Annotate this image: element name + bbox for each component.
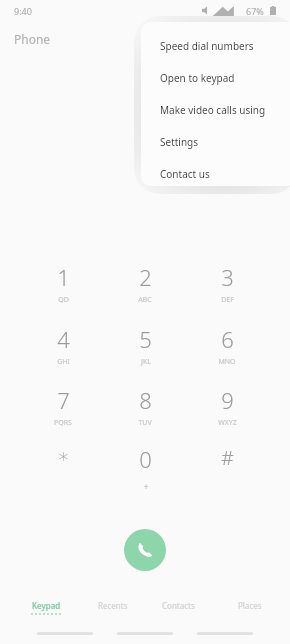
staticText: 3 <box>221 262 234 292</box>
button[interactable]: 3 <box>197 262 257 314</box>
button[interactable]: Call <box>124 529 166 571</box>
staticText: 1 <box>57 262 70 292</box>
button[interactable]: 1 <box>33 262 93 314</box>
staticText: 9 <box>221 385 234 415</box>
staticText: Open to keypad <box>160 71 235 85</box>
staticText: ABC <box>138 295 152 305</box>
staticText: WXYZ <box>218 418 237 428</box>
staticText: Speed dial numbers <box>160 39 254 53</box>
staticText: ∗ <box>57 444 70 467</box>
staticText: # <box>221 444 234 471</box>
button[interactable]: Places <box>217 600 283 622</box>
staticText: Phone <box>14 31 51 47</box>
staticText: GHI <box>57 357 70 367</box>
staticText: 4 <box>57 324 70 354</box>
button[interactable]: 7 <box>33 385 93 437</box>
staticText: Places <box>238 600 262 611</box>
staticText: 67% <box>246 5 264 17</box>
staticText: 2 <box>139 262 152 292</box>
staticText: Contacts <box>162 600 195 611</box>
staticText: DEF <box>221 295 234 305</box>
staticText: MNO <box>218 357 236 367</box>
button[interactable]: Settings <box>141 126 290 158</box>
button[interactable]: Keypad <box>13 600 79 622</box>
button[interactable]: ∗ <box>33 444 93 496</box>
button[interactable]: Speed dial numbers <box>141 30 290 62</box>
button[interactable]: Make video calls using <box>141 94 290 126</box>
button[interactable]: 0 <box>115 444 175 496</box>
button[interactable]: 6 <box>197 324 257 376</box>
button[interactable]: 8 <box>115 385 175 437</box>
button[interactable]: 5 <box>115 324 175 376</box>
staticText: QD <box>58 295 69 305</box>
staticText: 6 <box>221 324 234 354</box>
button[interactable]: Recents <box>80 600 146 622</box>
staticText: 7 <box>57 385 70 415</box>
staticText: 8 <box>139 385 152 415</box>
staticText: Make video calls using <box>160 103 266 117</box>
staticText: TUV <box>138 418 152 428</box>
staticText: Contact us <box>160 167 210 181</box>
staticText: 5 <box>139 324 152 354</box>
button[interactable]: Contacts <box>145 600 211 622</box>
button[interactable]: Open to keypad <box>141 62 290 94</box>
staticText: Settings <box>160 135 199 149</box>
button[interactable]: 4 <box>33 324 93 376</box>
button[interactable]: Contact us <box>141 158 290 186</box>
staticText: JKL <box>141 357 151 367</box>
button[interactable]: 9 <box>197 385 257 437</box>
staticText: Keypad <box>32 600 61 611</box>
staticText: 9:40 <box>14 5 32 17</box>
staticText: 0 <box>139 444 152 474</box>
button[interactable]: # <box>197 444 257 496</box>
staticText: Recents <box>98 600 128 611</box>
staticText: + <box>143 480 149 492</box>
button[interactable]: 2 <box>115 262 175 314</box>
staticText: PQRS <box>54 418 72 428</box>
